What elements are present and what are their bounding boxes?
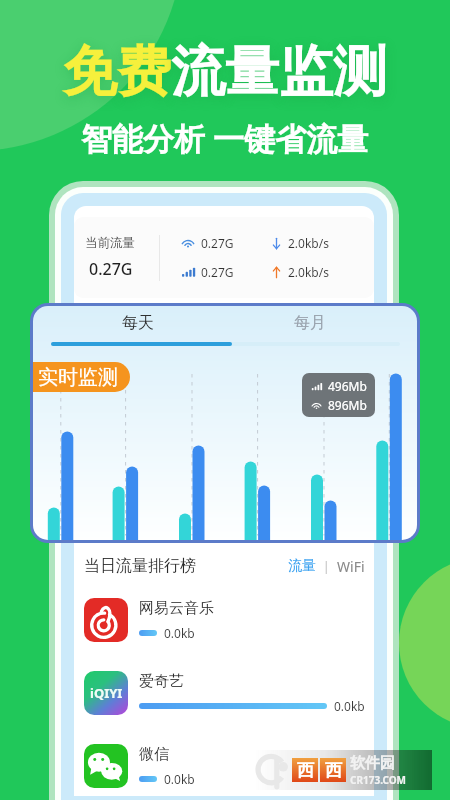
- staticText: 西: [297, 760, 314, 781]
- staticText: 每天: [122, 313, 154, 333]
- staticText: 0.27G: [201, 264, 234, 280]
- staticText: WiFi: [337, 557, 365, 576]
- staticText: CR173.COM: [350, 773, 407, 787]
- staticText: 当前流量: [85, 235, 135, 251]
- staticText: 流量监测: [171, 38, 387, 106]
- staticText: 2.0kb/s: [288, 235, 329, 251]
- staticText: 0.0kb: [164, 771, 195, 787]
- staticText: 网易云音乐: [139, 599, 214, 618]
- staticText: 896Mb: [328, 397, 367, 413]
- button[interactable]: WiFi: [337, 557, 365, 576]
- button[interactable]: 流量: [288, 557, 316, 575]
- staticText: 0.27G: [89, 258, 133, 280]
- button[interactable]: 每天: [33, 313, 225, 333]
- staticText: 每月: [294, 313, 326, 333]
- button[interactable]: 网易云音乐: [84, 598, 365, 642]
- staticText: 爱奇艺: [139, 672, 184, 691]
- staticText: 软件园: [350, 754, 395, 773]
- button[interactable]: iQIYI: [84, 671, 365, 715]
- staticText: 496Mb: [328, 378, 367, 394]
- staticText: 实时监测: [38, 365, 118, 390]
- staticText: 西: [325, 760, 342, 781]
- staticText: 微信: [139, 745, 169, 764]
- staticText: 0.0kb: [334, 698, 365, 714]
- staticText: 免费: [63, 38, 171, 106]
- staticText: 0.0kb: [164, 625, 195, 641]
- staticText: 0.27G: [201, 235, 234, 251]
- staticText: 智能分析 一键省流量: [81, 117, 369, 159]
- button[interactable]: 每月: [225, 313, 417, 333]
- staticText: |: [316, 557, 337, 575]
- button[interactable]: 微信: [84, 744, 365, 788]
- staticText: 当日流量排行榜: [84, 556, 196, 576]
- button[interactable]: 实时监测: [33, 362, 130, 392]
- staticText: 2.0kb/s: [288, 264, 329, 280]
- staticText: iQIYI: [90, 684, 123, 702]
- staticText: 流量: [288, 557, 316, 575]
